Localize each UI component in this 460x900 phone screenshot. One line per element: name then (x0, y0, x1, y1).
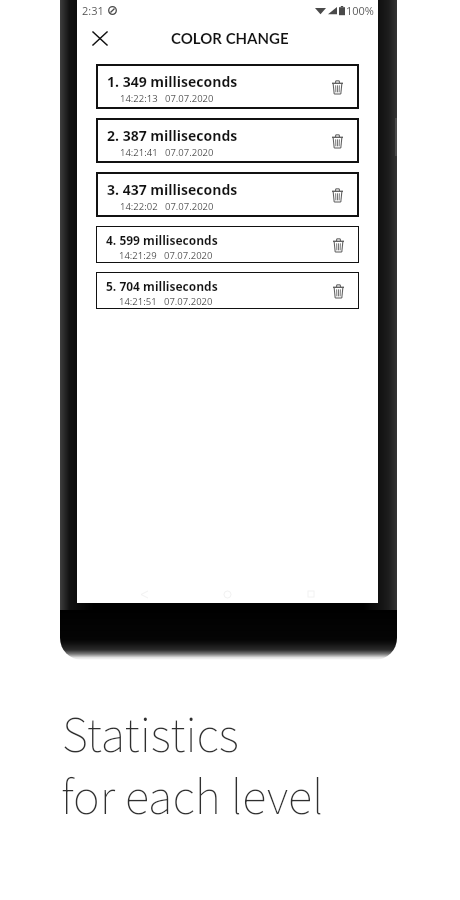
staticText: 5. 704 milliseconds (106, 278, 218, 294)
button[interactable]: Close (89, 27, 111, 49)
staticText: COLOR CHANGE (171, 29, 289, 47)
staticText: 14:22:02 07.07.2020 (120, 200, 214, 213)
staticText: 1. 349 milliseconds (107, 72, 238, 91)
staticText: 2:31 (82, 3, 104, 18)
staticText: Statistics (62, 701, 239, 766)
staticText: 14:21:41 07.07.2020 (120, 146, 214, 159)
staticText: 3. 437 milliseconds (107, 180, 238, 199)
button[interactable]: 4. 599 milliseconds (97, 227, 358, 262)
staticText: 2. 387 milliseconds (107, 126, 238, 145)
staticText: 14:22:13 07.07.2020 (120, 92, 214, 105)
staticText: for each level (61, 763, 324, 828)
button[interactable]: Delete result (327, 131, 347, 151)
staticText: 14:21:51 07.07.2020 (119, 295, 213, 308)
button[interactable]: Delete result (327, 77, 347, 97)
button[interactable]: 3. 437 milliseconds (98, 174, 357, 215)
staticText: 100% (346, 3, 374, 18)
staticText: 4. 599 milliseconds (106, 232, 218, 248)
button[interactable]: 2. 387 milliseconds (98, 120, 357, 161)
button[interactable]: Delete result (328, 281, 348, 301)
button[interactable]: 5. 704 milliseconds (97, 273, 358, 308)
button[interactable]: 1. 349 milliseconds (98, 66, 357, 107)
button[interactable]: Delete result (327, 185, 347, 205)
staticText: 14:21:29 07.07.2020 (119, 249, 213, 262)
button[interactable]: Delete result (328, 235, 348, 255)
